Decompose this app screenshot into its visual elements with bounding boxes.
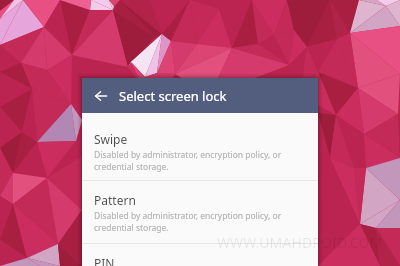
- staticText: Disabled by administrator, encryption po…: [94, 210, 308, 234]
- button[interactable]: Swipe: [82, 113, 318, 180]
- staticText: Swipe: [94, 131, 128, 147]
- button[interactable]: Pattern: [82, 181, 318, 243]
- staticText: Select screen lock: [119, 87, 227, 105]
- button[interactable]: PIN: [82, 244, 318, 266]
- staticText: Pattern: [94, 192, 136, 208]
- staticText: Disabled by administrator, encryption po…: [94, 149, 308, 173]
- button[interactable]: Back: [82, 78, 119, 113]
- staticText: WWW.UMAHDROID.COM: [217, 233, 383, 252]
- staticText: PIN: [94, 255, 115, 266]
